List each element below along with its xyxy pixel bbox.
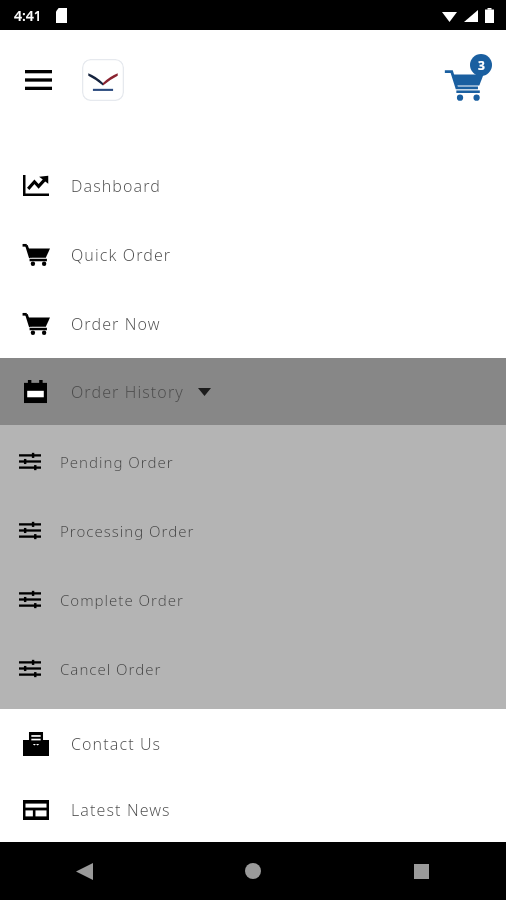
button[interactable]: Recent apps — [337, 842, 506, 900]
staticText: Contact Us — [71, 733, 162, 755]
staticText: Order Now — [71, 313, 161, 335]
button[interactable]: Order History — [0, 358, 506, 425]
staticText: 4:41 — [14, 6, 42, 25]
button[interactable]: Quick Order — [0, 220, 506, 289]
button[interactable]: Home — [168, 842, 337, 900]
button[interactable]: Back — [0, 842, 168, 900]
button[interactable]: Latest News — [0, 778, 506, 842]
button[interactable]: Shopping cart, 3 items — [438, 52, 494, 108]
staticText: Dashboard — [71, 175, 162, 197]
staticText: Latest News — [71, 799, 171, 821]
button[interactable]: Contact Us — [0, 709, 506, 778]
button[interactable]: Processing Order — [0, 496, 506, 565]
button[interactable]: App logo — [82, 59, 124, 101]
staticText: 3 — [478, 57, 485, 73]
button[interactable]: Complete Order — [0, 565, 506, 634]
button[interactable]: Order Now — [0, 289, 506, 358]
button[interactable]: Open navigation menu — [14, 56, 62, 104]
button[interactable]: Cancel Order — [0, 634, 506, 703]
staticText: Order History — [71, 381, 184, 403]
button[interactable]: Dashboard — [0, 151, 506, 220]
staticText: Cancel Order — [60, 659, 162, 679]
staticText: Complete Order — [60, 590, 184, 610]
staticText: Pending Order — [60, 452, 174, 472]
staticText: Processing Order — [60, 521, 195, 541]
staticText: Quick Order — [71, 244, 172, 266]
button[interactable]: Pending Order — [0, 427, 506, 496]
